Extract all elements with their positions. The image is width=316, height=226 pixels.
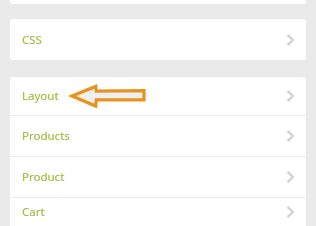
staticText: Products	[22, 128, 70, 144]
button[interactable]: CSS	[10, 19, 306, 60]
button[interactable]: Layout	[10, 77, 306, 115]
other: Arrow pointing to Layout	[72, 84, 144, 108]
button[interactable]: Products	[10, 116, 306, 156]
button[interactable]: Product	[10, 157, 306, 197]
staticText: Cart	[22, 204, 45, 220]
staticText: CSS	[22, 32, 42, 48]
button[interactable]: Cart	[10, 198, 306, 226]
staticText: Product	[22, 169, 65, 185]
staticText: Layout	[22, 88, 59, 104]
